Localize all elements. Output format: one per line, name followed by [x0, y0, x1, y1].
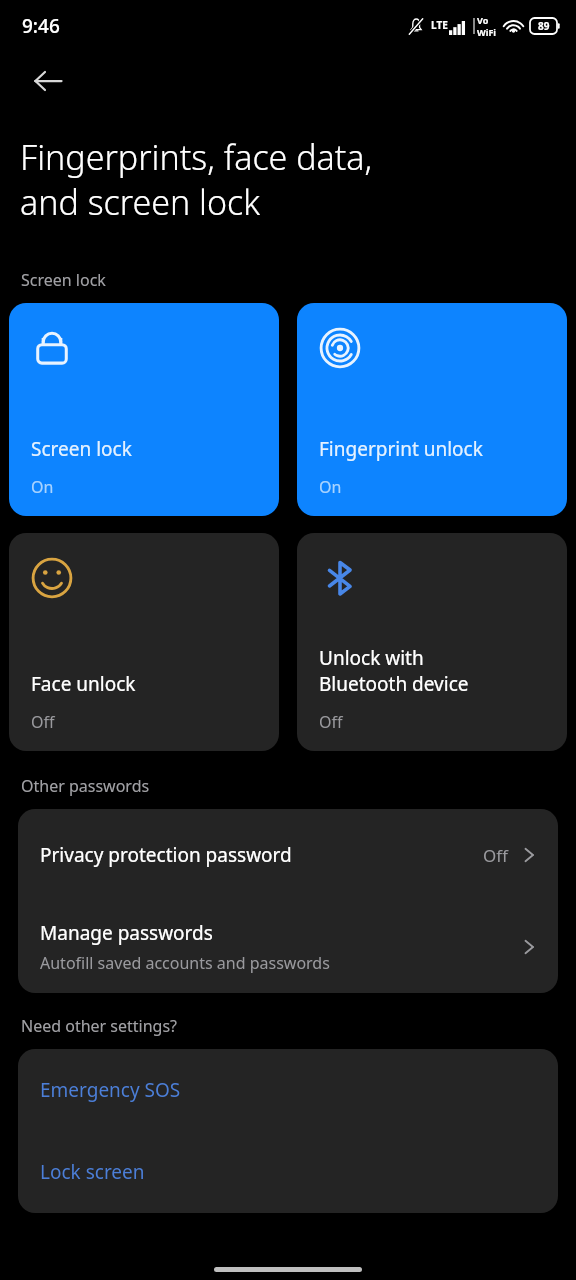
button[interactable]: Privacy protection password: [18, 809, 558, 901]
staticText: Vo: [477, 14, 489, 26]
button[interactable]: Unlock with Bluetooth device: [297, 533, 567, 751]
staticText: WiFi: [477, 26, 497, 38]
staticText: Screen lock: [31, 436, 132, 462]
staticText: On: [319, 476, 342, 498]
staticText: Off: [319, 711, 343, 733]
staticText: Other passwords: [21, 775, 150, 797]
button[interactable]: Fingerprint unlock: [297, 303, 567, 516]
button[interactable]: Face unlock: [9, 533, 279, 751]
staticText: Need other settings?: [21, 1015, 178, 1037]
button[interactable]: Manage passwords: [18, 901, 558, 993]
staticText: Face unlock: [31, 671, 136, 697]
button[interactable]: Emergency SOS: [18, 1049, 558, 1131]
staticText: Manage passwords: [40, 920, 213, 946]
staticText: Unlock with Bluetooth device: [319, 645, 469, 697]
button[interactable]: Screen lock: [9, 303, 279, 516]
staticText: Off: [31, 711, 55, 733]
staticText: LTE: [431, 18, 448, 32]
staticText: Screen lock: [21, 269, 106, 291]
button[interactable]: Lock screen: [18, 1131, 558, 1213]
staticText: 89: [538, 19, 550, 33]
staticText: Lock screen: [40, 1159, 145, 1185]
button[interactable]: Back: [24, 57, 72, 105]
staticText: Fingerprints, face data, and screen lock: [20, 134, 373, 225]
staticText: Emergency SOS: [40, 1077, 181, 1103]
staticText: Privacy protection password: [40, 842, 483, 868]
staticText: Off: [483, 844, 508, 867]
staticText: Autofill saved accounts and passwords: [40, 952, 330, 974]
staticText: Fingerprint unlock: [319, 436, 483, 462]
staticText: On: [31, 476, 54, 498]
staticText: 9:46: [22, 13, 60, 39]
